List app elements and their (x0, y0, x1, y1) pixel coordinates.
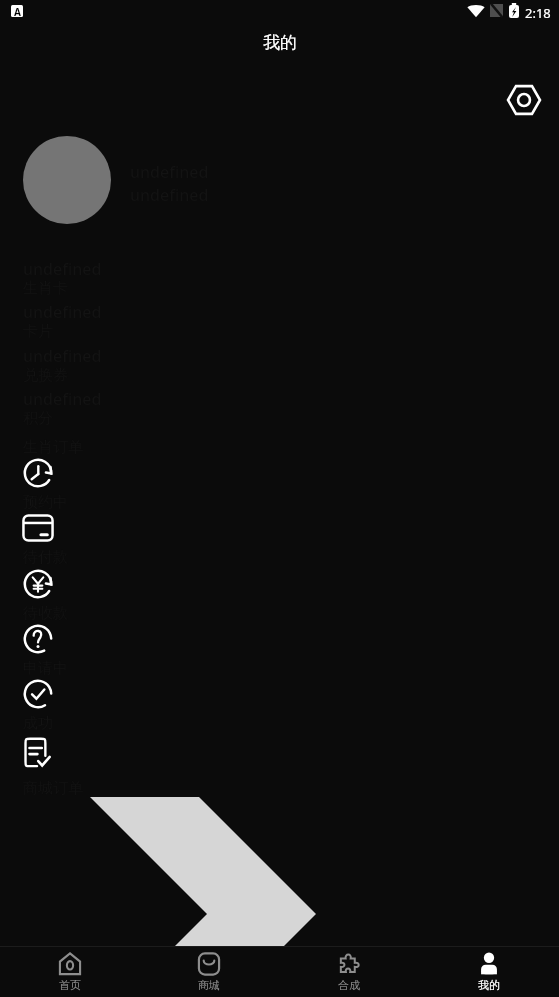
button[interactable]: 待付款 (21, 511, 55, 545)
button[interactable]: 待收款 (21, 567, 55, 601)
button[interactable]: 成功 (21, 677, 55, 711)
staticText: 首页 (59, 978, 81, 992)
button[interactable]: Settings (503, 79, 545, 121)
staticText: 2:18 (525, 4, 551, 22)
button[interactable]: 商城订单 (20, 735, 56, 771)
button[interactable]: 我的 (419, 947, 559, 997)
staticText: 商城 (198, 978, 220, 992)
button[interactable]: 预约中 (21, 456, 55, 490)
button[interactable]: 商城 (139, 947, 279, 997)
staticText: 合成 (338, 978, 360, 992)
staticText: 我的 (263, 32, 297, 53)
button[interactable] (23, 136, 111, 224)
staticText: 我的 (478, 978, 500, 992)
staticText: A (14, 5, 21, 17)
button[interactable]: 申请中 (21, 622, 55, 656)
button[interactable]: 首页 (0, 947, 139, 997)
button[interactable]: 合成 (279, 947, 419, 997)
